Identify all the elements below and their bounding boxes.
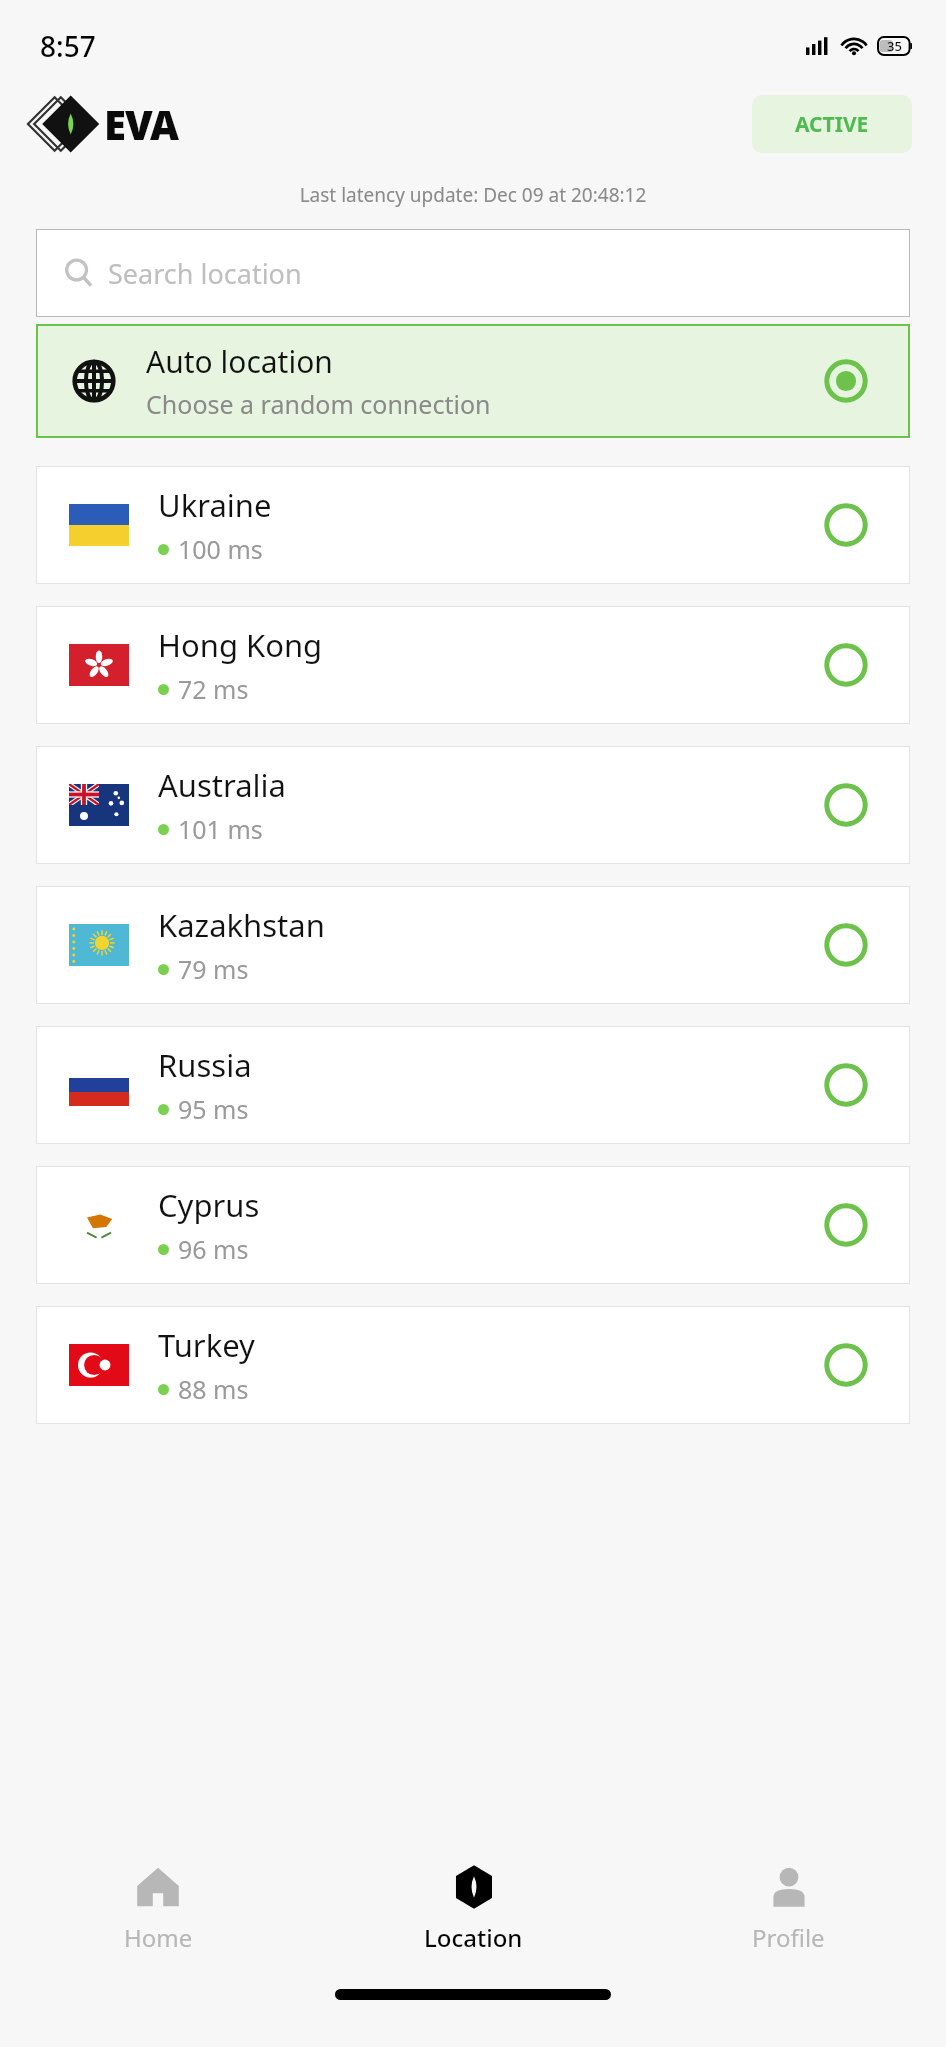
staticText: Profile bbox=[752, 1921, 825, 1954]
staticText: Hong Kong bbox=[158, 624, 323, 666]
button[interactable]: Auto location bbox=[36, 324, 910, 438]
staticText: 96 ms bbox=[178, 1232, 249, 1266]
staticText: 95 ms bbox=[178, 1092, 249, 1126]
button[interactable]: Australia bbox=[36, 746, 910, 864]
staticText: EVA bbox=[104, 97, 179, 151]
button[interactable]: ACTIVE bbox=[752, 95, 912, 153]
staticText: 88 ms bbox=[178, 1372, 249, 1406]
button[interactable]: Turkey bbox=[36, 1306, 910, 1424]
staticText: ACTIVE bbox=[795, 110, 869, 139]
staticText: Auto location bbox=[146, 341, 333, 382]
button[interactable]: Cyprus bbox=[36, 1166, 910, 1284]
staticText: 79 ms bbox=[178, 952, 249, 986]
staticText: 8:57 bbox=[40, 27, 96, 65]
button[interactable]: Location bbox=[316, 1847, 631, 1967]
button[interactable]: Hong Kong bbox=[36, 606, 910, 724]
staticText: 100 ms bbox=[178, 532, 263, 566]
staticText: 101 ms bbox=[178, 812, 263, 846]
staticText: Australia bbox=[158, 764, 286, 806]
staticText: Choose a random connection bbox=[146, 387, 491, 421]
staticText: Cyprus bbox=[158, 1184, 260, 1226]
button[interactable]: Profile bbox=[631, 1847, 946, 1967]
staticText: Last latency update: Dec 09 at 20:48:12 bbox=[0, 182, 946, 208]
staticText: Ukraine bbox=[158, 484, 272, 526]
button[interactable]: Kazakhstan bbox=[36, 886, 910, 1004]
staticText: Turkey bbox=[158, 1324, 255, 1366]
staticText: Search location bbox=[108, 255, 302, 292]
button[interactable]: Russia bbox=[36, 1026, 910, 1144]
button[interactable]: Ukraine bbox=[36, 466, 910, 584]
staticText: 72 ms bbox=[178, 672, 249, 706]
staticText: Russia bbox=[158, 1044, 252, 1086]
staticText: Location bbox=[424, 1921, 523, 1954]
staticText: Kazakhstan bbox=[158, 904, 325, 946]
button[interactable]: Home bbox=[0, 1847, 316, 1967]
button[interactable]: Search location bbox=[36, 229, 910, 317]
staticText: Home bbox=[124, 1921, 193, 1954]
staticText: 35 bbox=[887, 37, 902, 55]
